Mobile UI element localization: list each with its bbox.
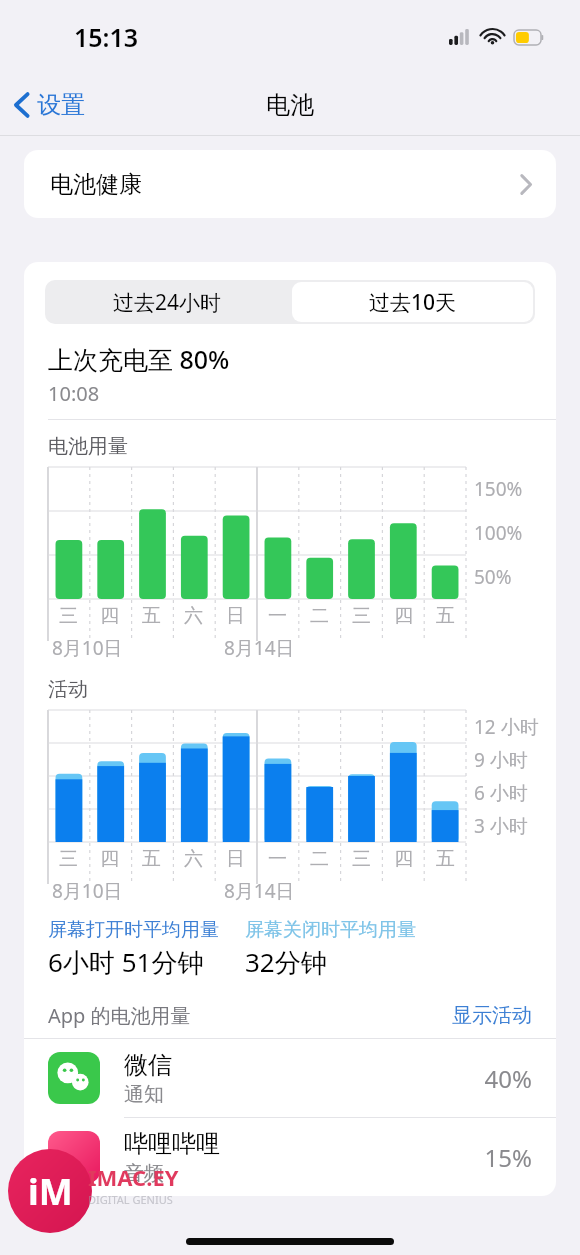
staticText: 六 — [184, 847, 203, 871]
staticText: 微信 — [124, 1050, 172, 1080]
staticText: 四 — [100, 604, 119, 628]
staticText: 32分钟 — [245, 944, 327, 980]
staticText: 设置 — [37, 90, 85, 120]
staticText: 8月10日 — [52, 635, 123, 661]
staticText: DIGITAL GENIUS — [88, 1192, 173, 1207]
staticText: 电池健康 — [50, 170, 142, 199]
staticText: IMAC.EY — [88, 1162, 179, 1192]
staticText: 8月14日 — [224, 635, 295, 661]
staticText: 五 — [436, 604, 455, 628]
staticText: 日 — [226, 604, 245, 628]
button[interactable]: 过去10天 — [292, 282, 533, 322]
staticText: 9 小时 — [474, 747, 528, 773]
button[interactable]: 显示活动 — [428, 999, 556, 1032]
staticText: 五 — [142, 604, 161, 628]
staticText: 150% — [474, 476, 523, 502]
staticText: 音频 — [124, 1161, 164, 1186]
staticText: 四 — [394, 604, 413, 628]
staticText: 15% — [484, 1141, 532, 1174]
staticText: 电池 — [266, 90, 314, 120]
staticText: 3 小时 — [474, 813, 528, 839]
staticText: 五 — [436, 847, 455, 871]
staticText: 50% — [474, 564, 512, 590]
staticText: 过去24小时 — [113, 288, 222, 317]
staticText: 上次充电至 80% — [48, 342, 230, 376]
staticText: 显示活动 — [452, 1003, 532, 1028]
staticText: 一 — [268, 604, 287, 628]
staticText: iM — [28, 1167, 73, 1216]
staticText: 三 — [352, 604, 371, 628]
staticText: 6 小时 — [474, 780, 528, 806]
staticText: 40% — [484, 1062, 532, 1095]
staticText: 8月10日 — [52, 878, 123, 904]
staticText: 8月14日 — [224, 878, 295, 904]
button[interactable]: 设置 — [0, 84, 95, 126]
staticText: 100% — [474, 520, 523, 546]
staticText: 12 小时 — [474, 714, 539, 740]
staticText: 10:08 — [48, 380, 100, 407]
staticText: 屏幕关闭时平均用量 — [245, 918, 416, 942]
staticText: App 的电池用量 — [48, 1002, 191, 1029]
staticText: 四 — [100, 847, 119, 871]
staticText: 过去10天 — [369, 288, 457, 317]
button[interactable]: 过去24小时 — [45, 280, 290, 324]
staticText: 四 — [394, 847, 413, 871]
staticText: 五 — [142, 847, 161, 871]
button[interactable]: 微信 — [24, 1039, 556, 1117]
staticText: 通知 — [124, 1082, 164, 1107]
staticText: 活动 — [48, 677, 88, 702]
staticText: 三 — [59, 847, 78, 871]
staticText: 三 — [352, 847, 371, 871]
staticText: 日 — [226, 847, 245, 871]
staticText: 电池用量 — [48, 434, 128, 459]
staticText: 6小时 51分钟 — [48, 944, 204, 980]
button[interactable]: 电池健康 — [24, 150, 556, 218]
staticText: 哔哩哔哩 — [124, 1129, 220, 1159]
staticText: 15:13 — [74, 20, 139, 54]
staticText: 二 — [310, 847, 329, 871]
staticText: 屏幕打开时平均用量 — [48, 918, 219, 942]
staticText: 二 — [310, 604, 329, 628]
staticText: 一 — [268, 847, 287, 871]
button[interactable]: 哔哩哔哩 — [24, 1118, 556, 1196]
staticText: 六 — [184, 604, 203, 628]
staticText: 三 — [59, 604, 78, 628]
